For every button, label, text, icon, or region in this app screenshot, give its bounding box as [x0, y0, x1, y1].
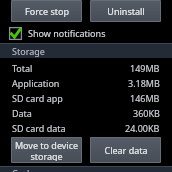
- button[interactable]: Force stop: [11, 0, 82, 22]
- staticText: Move to device storage: [14, 139, 79, 161]
- staticText: Storage: [12, 45, 45, 57]
- staticText: Show notifications: [28, 27, 106, 39]
- staticText: Uninstall: [107, 5, 145, 17]
- staticText: 360KB: [133, 107, 160, 119]
- staticText: Data: [12, 107, 32, 119]
- staticText: 24.00KB: [125, 122, 160, 134]
- staticText: 146MB: [130, 92, 160, 104]
- staticText: 3.18MB: [128, 77, 160, 89]
- button[interactable]: Show notifications: [0, 23, 172, 43]
- staticText: SD card data: [12, 122, 66, 134]
- button[interactable]: Move to device storage: [11, 137, 82, 163]
- staticText: Force stop: [25, 5, 69, 17]
- button[interactable]: Uninstall: [90, 0, 161, 22]
- staticText: SD card app: [12, 92, 63, 104]
- staticText: Application: [12, 77, 60, 89]
- button[interactable]: Clear data: [90, 137, 161, 163]
- staticText: Cache: [12, 167, 38, 172]
- staticText: Total: [12, 62, 33, 74]
- staticText: Clear data: [104, 144, 148, 156]
- staticText: 149MB: [130, 62, 160, 74]
